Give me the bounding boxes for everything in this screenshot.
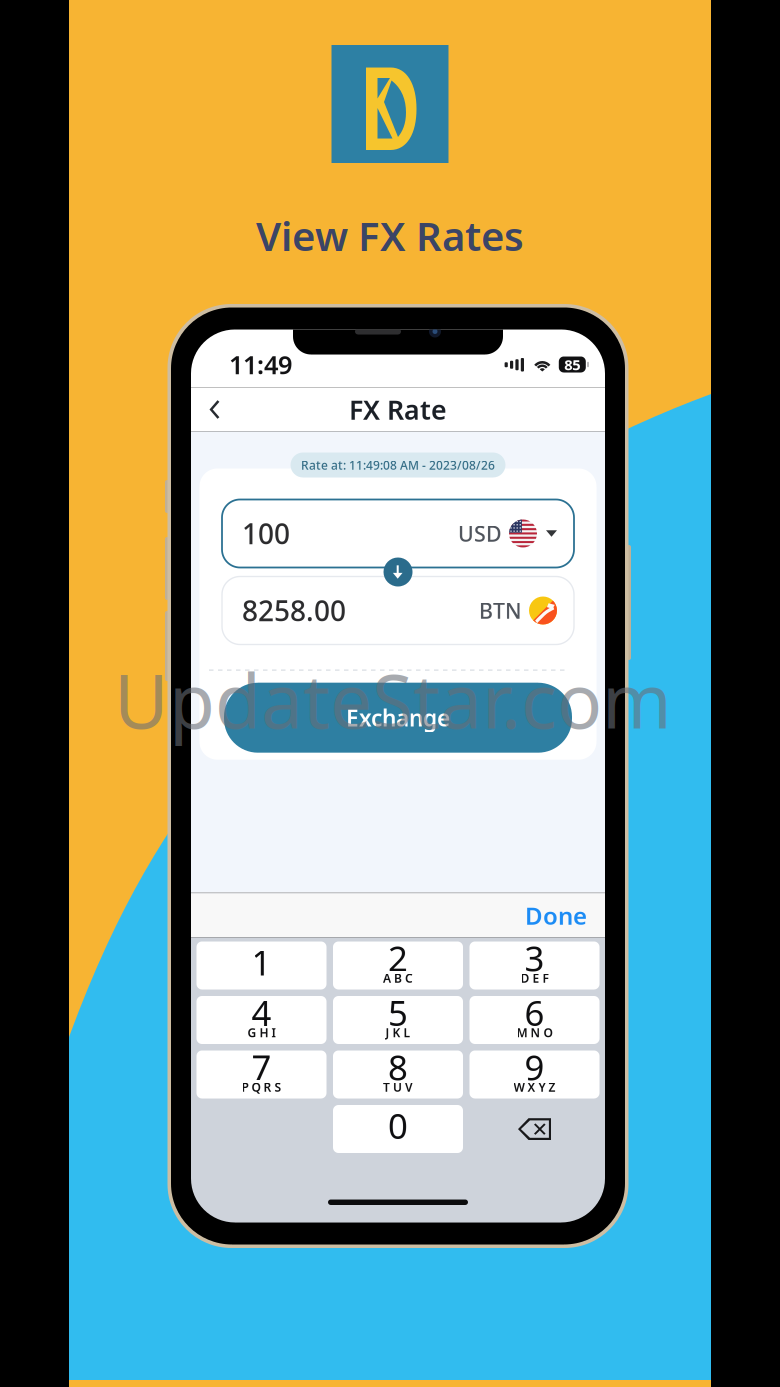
staticText: 7 [251,1044,271,1090]
staticText: G H I [247,1024,275,1040]
button[interactable]: 7 [196,1050,326,1098]
staticText: USD [458,519,502,548]
button[interactable]: 0 [333,1105,463,1153]
staticText: D E F [520,970,548,986]
staticText: M N O [516,1024,552,1040]
staticText: View FX Rates [256,209,524,262]
staticText: Exchange [346,703,450,733]
staticText: 8 [388,1044,408,1090]
button[interactable]: 4 [196,996,326,1044]
button[interactable]: 2 [333,941,463,989]
staticText: P Q R S [241,1079,281,1095]
button[interactable]: Exchange [224,683,572,753]
staticText: 3 [524,935,544,981]
staticText: 2 [388,935,408,981]
button[interactable]: 6 [469,996,599,1044]
staticText: Done [525,900,587,931]
staticText: 8258.00 [242,592,346,629]
staticText: Rate at: 11:49:08 AM - 2023/08/26 [301,457,495,473]
staticText: 0 [388,1103,408,1149]
button[interactable]: Delete [469,1105,599,1153]
button[interactable]: 3 [469,941,599,989]
button[interactable]: 9 [469,1050,599,1098]
staticText: 11:49 [229,348,292,381]
button[interactable]: Done [507,890,605,941]
staticText: 6 [524,989,544,1035]
staticText: 4 [251,989,271,1035]
button[interactable]: 5 [333,996,463,1044]
staticText: W X Y Z [513,1079,555,1095]
staticText: A B C [383,970,413,986]
staticText: 5 [388,989,408,1035]
staticText: 1 [251,939,271,985]
button[interactable]: Back [191,387,237,431]
staticText: 85 [564,355,580,374]
staticText: UpdateStar.com [114,650,672,749]
staticText: 9 [524,1044,544,1090]
button[interactable]: 8 [333,1050,463,1098]
staticText: FX Rate [349,392,447,427]
staticText: J K L [385,1024,410,1040]
button[interactable]: 1 [196,941,326,989]
staticText: T U V [383,1079,413,1095]
staticText: BTN [479,596,522,625]
staticText: 100 [242,515,290,552]
